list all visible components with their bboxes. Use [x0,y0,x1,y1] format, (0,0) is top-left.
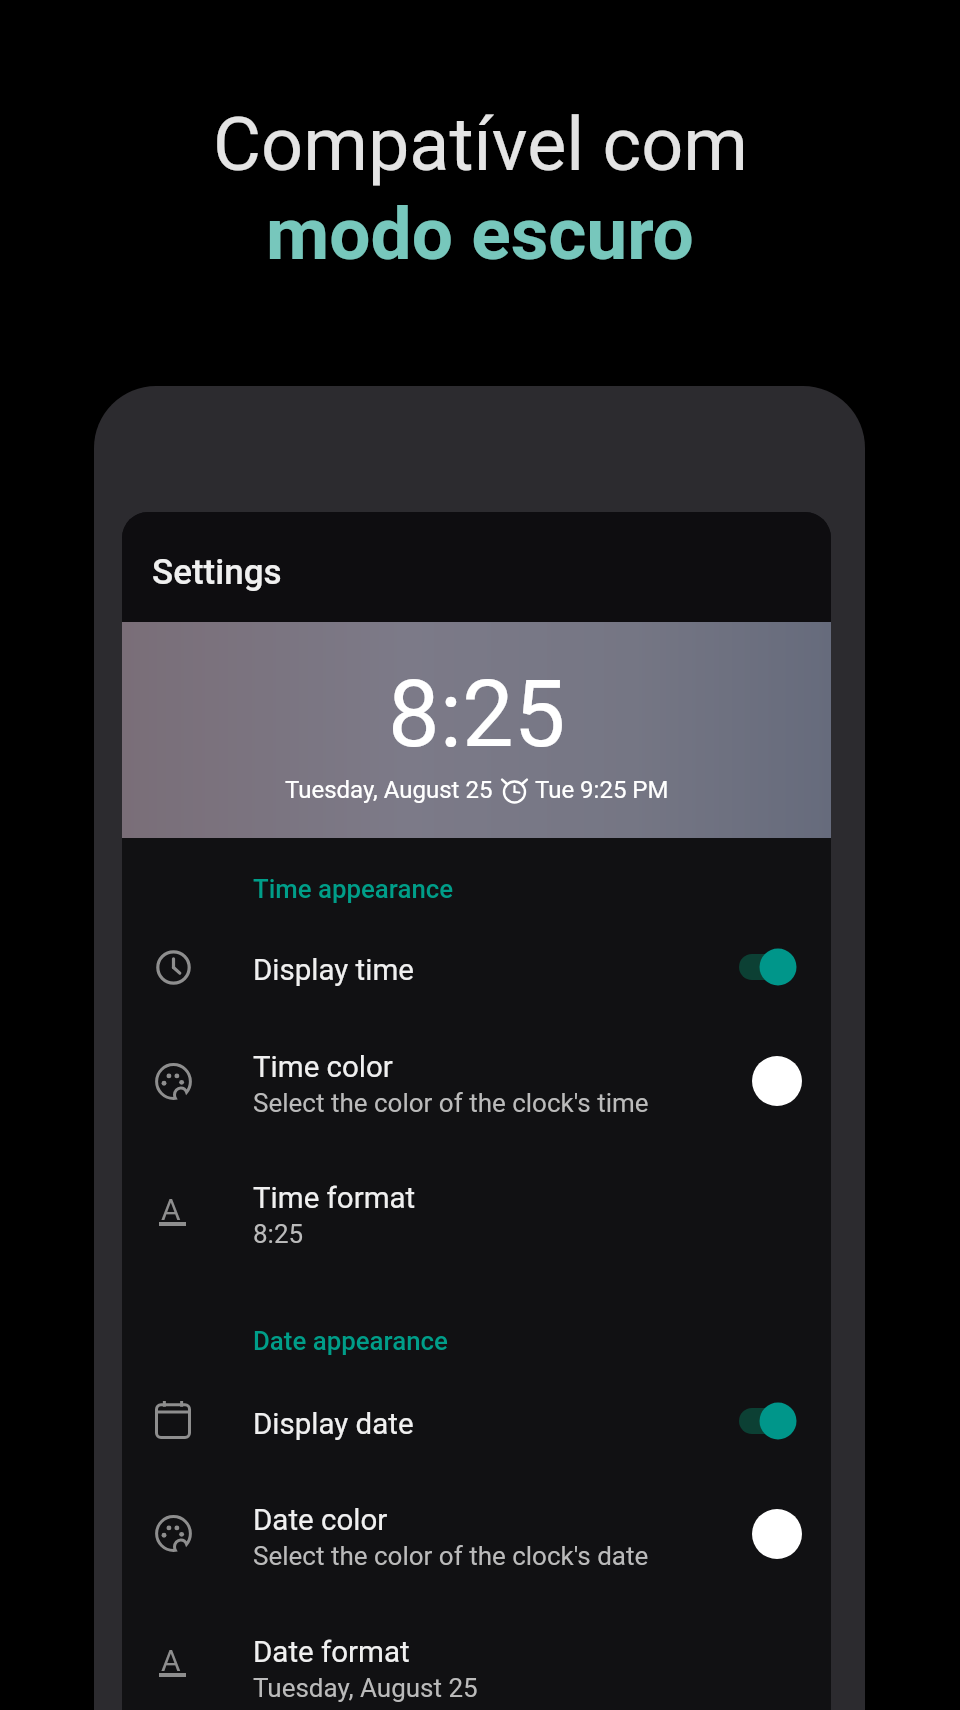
staticText: Time format [253,1181,416,1216]
staticText: modo escuro [266,191,694,277]
staticText: Display time [253,953,414,988]
staticText: Tue 9:25 PM [535,776,669,804]
staticText: Date color [253,1503,388,1538]
staticText: A [161,1192,181,1225]
staticText: Time color [253,1050,393,1085]
staticText: 8:25 [388,661,566,769]
staticText: Tuesday, August 25 [253,1673,478,1703]
button[interactable]: Display date [122,1369,831,1477]
button[interactable]: Display time [122,915,831,1023]
staticText: Display date [253,1407,414,1442]
button[interactable]: Time color [122,1022,831,1146]
staticText: Date format [253,1635,410,1670]
staticText: Tuesday, August 25 [285,776,493,804]
staticText: Select the color of the clock's date [253,1541,649,1571]
button[interactable]: A [122,1607,831,1710]
button[interactable]: Pick color [741,1498,813,1570]
staticText: Settings [152,552,282,593]
staticText: Select the color of the clock's time [253,1088,649,1118]
button[interactable]: Toggle [727,937,809,997]
staticText: A [161,1643,181,1676]
button[interactable]: Pick color [741,1045,813,1117]
staticText: 8:25 [253,1219,304,1249]
button[interactable]: Toggle [727,1391,809,1451]
button[interactable]: A [122,1153,831,1277]
staticText: Date appearance [253,1326,448,1356]
button[interactable]: Date color [122,1475,831,1599]
staticText: Compatível com [213,102,748,188]
staticText: Time appearance [253,874,454,904]
